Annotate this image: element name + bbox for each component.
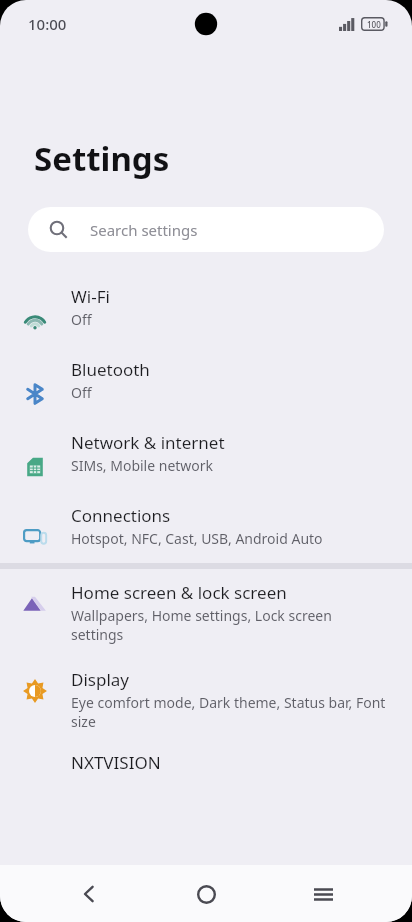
button[interactable]: Wi-Fi	[0, 273, 412, 346]
button[interactable]: Search settings	[28, 207, 384, 252]
staticText: Wi-Fi	[71, 285, 110, 308]
staticText: Search settings	[90, 220, 198, 240]
staticText: Off	[71, 310, 92, 329]
staticText: 10:00	[28, 14, 67, 34]
button[interactable]: Home	[178, 866, 234, 922]
button[interactable]: Home screen & lock screen	[0, 569, 412, 656]
staticText: Connections	[71, 504, 171, 527]
button[interactable]: Connections	[0, 492, 412, 563]
staticText: Wallpapers, Home settings, Lock screen s…	[71, 606, 386, 644]
button[interactable]: Back	[61, 866, 117, 922]
button[interactable]: Bluetooth	[0, 346, 412, 419]
staticText: NXTVISION	[71, 751, 161, 774]
staticText: 100	[367, 19, 381, 30]
staticText: Network & internet	[71, 431, 225, 454]
staticText: Bluetooth	[71, 358, 150, 381]
staticText: Hotspot, NFC, Cast, USB, Android Auto	[71, 529, 323, 548]
staticText: Home screen & lock screen	[71, 581, 287, 604]
button[interactable]: Display	[0, 656, 412, 743]
staticText: Settings	[34, 136, 170, 181]
button[interactable]: Network & internet	[0, 419, 412, 492]
staticText: SIMs, Mobile network	[71, 456, 214, 475]
staticText: Off	[71, 383, 92, 402]
staticText: Eye comfort mode, Dark theme, Status bar…	[71, 693, 386, 731]
button[interactable]: Recent apps	[295, 866, 351, 922]
staticText: Display	[71, 668, 129, 691]
